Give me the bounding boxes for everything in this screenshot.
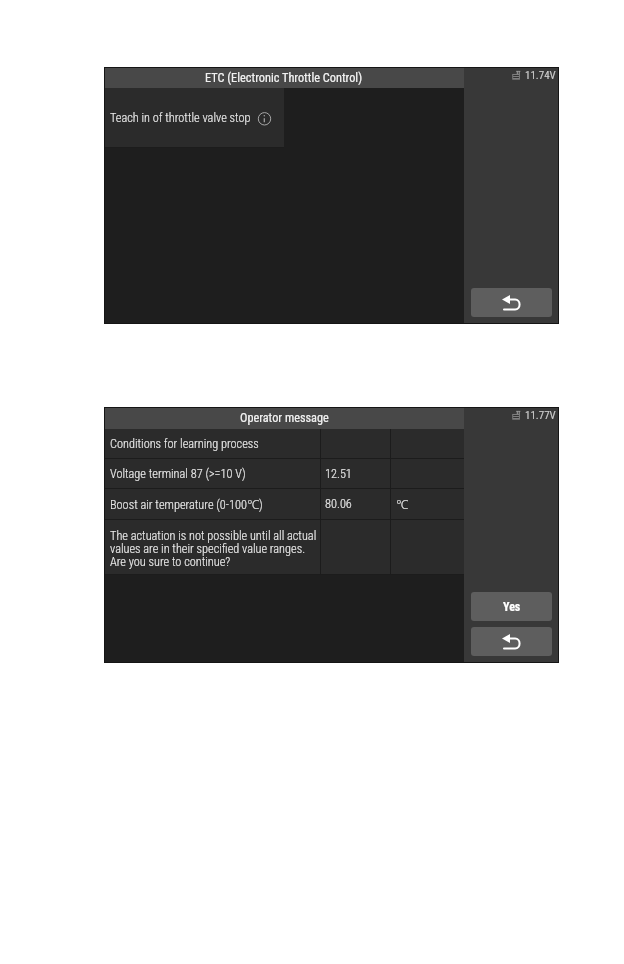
staticText: Operator message: [240, 411, 329, 425]
button[interactable]: Back: [471, 288, 552, 317]
staticText: 80.06: [325, 497, 352, 511]
staticText: ETC (Electronic Throttle Control): [205, 71, 363, 85]
staticText: Voltage terminal 87 (>=10 V): [110, 467, 246, 481]
button[interactable]: Yes: [471, 592, 552, 621]
staticText: Teach in of throttle valve stop: [110, 111, 251, 125]
staticText: Yes: [503, 600, 521, 614]
staticText: 12.51: [325, 467, 352, 481]
button[interactable]: Teach in of throttle valve stop: [104, 88, 284, 148]
staticText: 11.77V: [525, 409, 556, 422]
button[interactable]: Back: [471, 627, 552, 656]
staticText: ℃: [396, 496, 409, 513]
staticText: 11.74V: [525, 69, 556, 82]
staticText: Boost air temperature (0-100℃): [110, 496, 263, 513]
staticText: Conditions for learning process: [110, 437, 259, 451]
staticText: The actuation is not possible until all …: [110, 529, 317, 569]
